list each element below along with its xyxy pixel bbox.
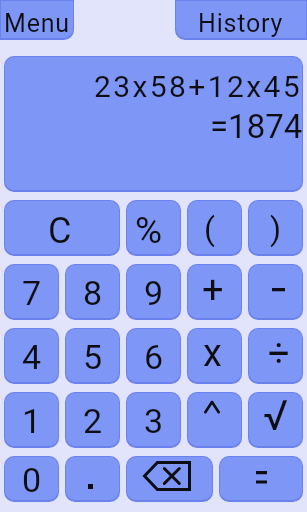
- button[interactable]: √: [248, 392, 303, 448]
- staticText: 9: [144, 273, 164, 313]
- button[interactable]: 4: [4, 328, 59, 384]
- button[interactable]: 1: [4, 392, 59, 448]
- staticText: 5: [83, 337, 103, 377]
- button[interactable]: ): [248, 200, 303, 256]
- button[interactable]: History: [175, 0, 307, 40]
- button[interactable]: [65, 456, 120, 502]
- staticText: %: [135, 209, 163, 252]
- button[interactable]: 2: [65, 392, 120, 448]
- button[interactable]: (: [187, 200, 242, 256]
- button[interactable]: 7: [4, 264, 59, 320]
- button[interactable]: 0: [4, 456, 59, 502]
- staticText: x: [203, 331, 222, 376]
- staticText: √: [263, 392, 289, 440]
- button[interactable]: 8: [65, 264, 120, 320]
- staticText: C: [48, 210, 72, 252]
- staticText: ): [270, 210, 282, 248]
- staticText: 8: [83, 273, 103, 313]
- staticText: 7: [22, 273, 42, 313]
- staticText: 2: [83, 401, 103, 441]
- staticText: =1874: [210, 107, 303, 146]
- staticText: 6: [144, 337, 164, 377]
- button[interactable]: %: [126, 200, 181, 256]
- staticText: 23x58+12x45: [94, 69, 303, 104]
- button[interactable]: 9: [126, 264, 181, 320]
- button[interactable]: C: [4, 200, 120, 256]
- button[interactable]: [187, 392, 242, 448]
- staticText: History: [198, 9, 284, 38]
- button[interactable]: 6: [126, 328, 181, 384]
- staticText: 3: [144, 401, 164, 441]
- staticText: ÷: [268, 331, 290, 376]
- staticText: Menu: [4, 9, 70, 38]
- button[interactable]: ÷: [248, 328, 303, 384]
- button[interactable]: [248, 264, 303, 320]
- button[interactable]: [219, 456, 303, 502]
- button[interactable]: +: [187, 264, 242, 320]
- button[interactable]: [126, 456, 213, 502]
- staticText: 1: [22, 401, 42, 441]
- button[interactable]: x: [187, 328, 242, 384]
- button[interactable]: 3: [126, 392, 181, 448]
- staticText: (: [204, 210, 215, 248]
- staticText: +: [202, 268, 224, 313]
- staticText: 0: [22, 460, 42, 500]
- staticText: 4: [22, 337, 42, 377]
- button[interactable]: Menu: [0, 0, 74, 40]
- button[interactable]: 5: [65, 328, 120, 384]
